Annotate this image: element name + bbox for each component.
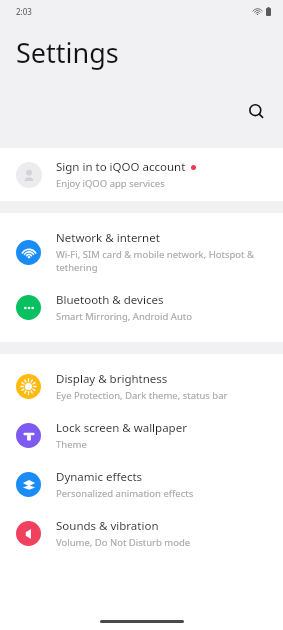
staticText: Wi-Fi, SIM card & mobile network, Hotspo… bbox=[56, 248, 267, 274]
button[interactable]: Sounds & vibration bbox=[0, 509, 283, 558]
staticText: Smart Mirroring, Android Auto bbox=[56, 310, 192, 323]
staticText: Theme bbox=[56, 438, 87, 451]
staticText: Display & brightness bbox=[56, 371, 168, 387]
staticText: Enjoy iQOO app services bbox=[56, 177, 165, 190]
staticText: Dynamic effects bbox=[56, 469, 143, 485]
button[interactable]: Sign in to iQOO account bbox=[0, 148, 283, 201]
staticText: Sounds & vibration bbox=[56, 518, 159, 534]
staticText: Lock screen & wallpaper bbox=[56, 420, 187, 436]
button[interactable]: Display & brightness bbox=[0, 362, 283, 411]
staticText: Personalized animation effects bbox=[56, 487, 194, 500]
staticText: Sign in to iQOO account bbox=[56, 159, 186, 175]
button[interactable]: Search bbox=[239, 94, 273, 128]
button[interactable]: Bluetooth & devices bbox=[0, 283, 283, 332]
button[interactable]: Dynamic effects bbox=[0, 460, 283, 509]
staticText: Settings bbox=[16, 34, 119, 71]
staticText: Volume, Do Not Disturb mode bbox=[56, 536, 191, 549]
staticText: Eye Protection, Dark theme, status bar bbox=[56, 389, 228, 402]
staticText: Network & internet bbox=[56, 230, 160, 246]
staticText: Bluetooth & devices bbox=[56, 292, 164, 308]
button[interactable]: Lock screen & wallpaper bbox=[0, 411, 283, 460]
button[interactable]: Network & internet bbox=[0, 221, 283, 283]
staticText: 2:03 bbox=[16, 6, 32, 17]
